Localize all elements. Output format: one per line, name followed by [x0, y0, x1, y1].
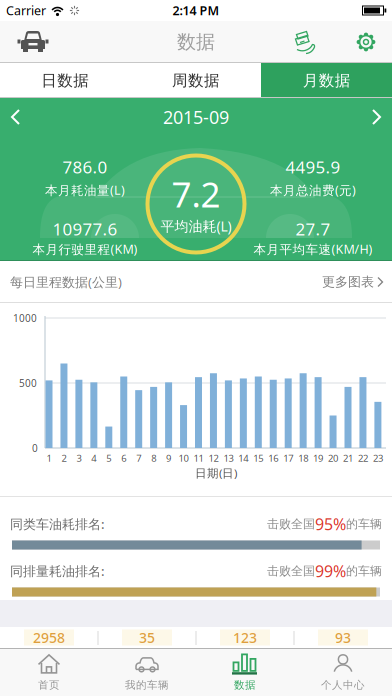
staticText: 的车辆: [346, 516, 382, 531]
staticText: 日期(日): [195, 465, 237, 481]
staticText: 18: [298, 451, 308, 464]
staticText: 14: [238, 451, 248, 464]
staticText: 99%: [315, 560, 346, 582]
staticText: 2958: [33, 628, 65, 647]
staticText: 27.7: [295, 217, 330, 241]
staticText: 7: [136, 451, 141, 464]
staticText: 13: [223, 451, 233, 464]
button[interactable]: 首页: [0, 648, 98, 695]
staticText: 击败全国: [267, 516, 315, 531]
staticText: 周数据: [172, 71, 220, 90]
staticText: 23: [373, 451, 383, 464]
button[interactable]: My car: [16, 29, 50, 55]
staticText: 我的车辆: [125, 678, 169, 692]
staticText: 日数据: [41, 71, 89, 90]
staticText: 的车辆: [346, 563, 382, 578]
staticText: 95%: [315, 513, 346, 535]
staticText: Carrier: [6, 2, 46, 19]
button[interactable]: Previous month: [8, 107, 24, 127]
staticText: 更多图表: [322, 274, 374, 290]
staticText: 15: [253, 451, 263, 464]
staticText: 8: [151, 451, 156, 464]
button[interactable]: Settings: [354, 30, 378, 54]
staticText: 本月耗油量(L): [45, 181, 125, 198]
staticText: 20: [328, 451, 338, 464]
staticText: 16: [268, 451, 278, 464]
staticText: 个人中心: [321, 678, 365, 692]
staticText: 500: [19, 376, 37, 390]
button[interactable]: 周数据: [131, 63, 261, 98]
staticText: 2:14 PM: [172, 2, 219, 19]
button[interactable]: Fuel savings: [292, 29, 318, 55]
staticText: 2: [61, 451, 66, 464]
staticText: 月数据: [303, 71, 351, 90]
staticText: 17: [283, 451, 293, 464]
button[interactable]: 我的车辆: [98, 648, 196, 695]
staticText: 3: [76, 451, 81, 464]
staticText: 21: [343, 451, 353, 464]
staticText: 2015-09: [163, 105, 229, 129]
staticText: 22: [358, 451, 368, 464]
staticText: 0: [32, 441, 38, 455]
staticText: 7.2: [171, 170, 220, 218]
button[interactable]: Next month: [368, 107, 384, 127]
staticText: 35: [139, 628, 155, 647]
staticText: 首页: [38, 678, 60, 692]
button[interactable]: 个人中心: [294, 648, 392, 695]
button[interactable]: 更多图表: [322, 274, 384, 290]
staticText: 9: [166, 451, 171, 464]
staticText: 786.0: [62, 155, 107, 179]
staticText: 同排量耗油排名:: [10, 562, 105, 580]
staticText: 11: [193, 451, 203, 464]
button[interactable]: 月数据: [261, 63, 392, 98]
staticText: 6: [121, 451, 126, 464]
staticText: 本月平均车速(KM/H): [253, 240, 372, 257]
staticText: 本月总油费(元): [270, 181, 356, 198]
staticText: 数据: [177, 30, 215, 54]
button[interactable]: 日数据: [0, 63, 131, 98]
staticText: 1000: [13, 311, 37, 325]
staticText: 4: [91, 451, 96, 464]
staticText: 93: [335, 628, 351, 647]
staticText: 本月行驶里程(KM): [32, 240, 137, 257]
button[interactable]: 数据: [196, 648, 294, 695]
staticText: 平均油耗(L): [160, 216, 231, 236]
staticText: 12: [208, 451, 218, 464]
staticText: 10: [178, 451, 188, 464]
staticText: 123: [233, 628, 257, 647]
staticText: 每日里程数据(公里): [10, 273, 122, 291]
staticText: 同类车油耗排名:: [10, 515, 105, 533]
staticText: 1: [46, 451, 51, 464]
staticText: 4495.9: [285, 155, 340, 179]
staticText: 10977.6: [52, 217, 117, 241]
staticText: 5: [106, 451, 111, 464]
staticText: 数据: [234, 678, 256, 692]
staticText: 19: [313, 451, 323, 464]
staticText: 击败全国: [267, 563, 315, 578]
